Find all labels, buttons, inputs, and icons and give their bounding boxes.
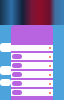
button[interactable] bbox=[11, 80, 53, 87]
button[interactable] bbox=[11, 62, 53, 69]
button[interactable] bbox=[11, 53, 53, 60]
button[interactable] bbox=[11, 45, 53, 51]
button[interactable] bbox=[11, 89, 53, 96]
button[interactable] bbox=[11, 71, 53, 78]
